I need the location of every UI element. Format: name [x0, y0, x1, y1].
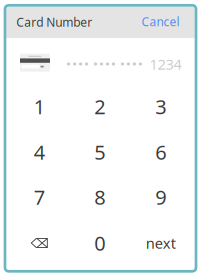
- staticText: 5: [94, 139, 105, 165]
- button[interactable]: 4: [9, 129, 70, 175]
- staticText: 8: [94, 184, 105, 210]
- staticText: 2: [94, 93, 105, 120]
- staticText: 1234: [149, 54, 181, 74]
- button[interactable]: 2: [69, 83, 130, 129]
- staticText: 7: [34, 184, 45, 210]
- staticText: Card Number: [16, 14, 92, 30]
- staticText: 1: [34, 93, 45, 120]
- staticText: 0: [94, 230, 105, 256]
- staticText: 9: [155, 184, 166, 210]
- button[interactable]: 1: [9, 83, 70, 129]
- button[interactable]: 5: [69, 129, 130, 175]
- button[interactable]: 0: [69, 220, 130, 266]
- button[interactable]: 9: [130, 174, 191, 220]
- staticText: Cancel: [141, 14, 179, 30]
- button[interactable]: 8: [69, 174, 130, 220]
- button[interactable]: 6: [130, 129, 191, 175]
- button[interactable]: 7: [9, 174, 70, 220]
- staticText: next: [146, 233, 176, 253]
- button[interactable]: Cancel: [123, 10, 179, 34]
- button[interactable]: Delete: [9, 220, 70, 266]
- staticText: 4: [34, 139, 45, 165]
- staticText: 3: [155, 93, 166, 120]
- button[interactable]: 3: [130, 83, 191, 129]
- button[interactable]: next: [130, 220, 191, 266]
- staticText: 6: [155, 139, 166, 165]
